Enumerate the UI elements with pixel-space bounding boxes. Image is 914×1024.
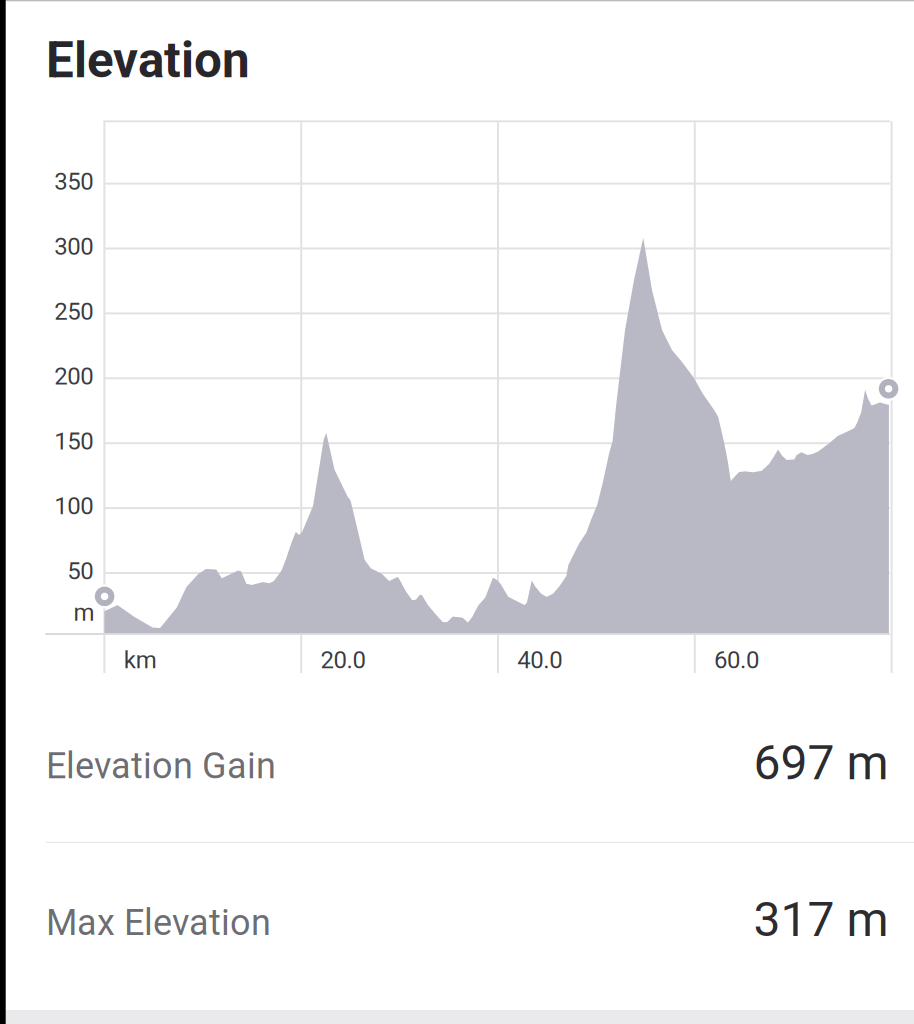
staticText: 100 [54,492,93,520]
button[interactable]: Elevation Gain [0,686,914,844]
staticText: 200 [54,362,93,390]
staticText: km [124,646,157,674]
staticText: 60.0 [714,646,759,674]
staticText: 317 m [753,891,888,948]
staticText: 350 [54,168,93,196]
staticText: 150 [54,427,93,455]
staticText: 250 [54,297,93,325]
staticText: m [73,599,94,627]
staticText: 40.0 [517,646,562,674]
button[interactable]: Max Elevation [0,843,914,1001]
staticText: Max Elevation [46,902,271,944]
staticText: 50 [67,557,93,585]
staticText: 300 [54,232,93,261]
staticText: Elevation Gain [46,745,276,787]
staticText: 697 m [753,735,888,791]
staticText: Elevation [46,31,250,89]
staticText: 20.0 [320,646,365,674]
